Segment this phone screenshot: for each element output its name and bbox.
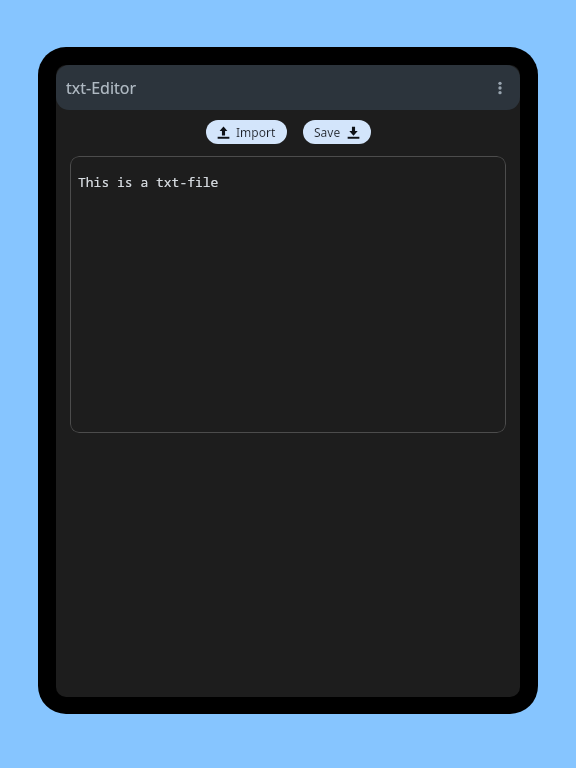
staticText: txt-Editor: [66, 77, 137, 99]
staticText: This is a txt-file: [78, 173, 219, 191]
staticText: Import: [236, 124, 276, 140]
button[interactable]: Save: [303, 120, 371, 144]
button[interactable]: This is a txt-file: [70, 156, 506, 433]
staticText: Save: [314, 124, 341, 140]
button[interactable]: Import: [206, 120, 287, 144]
button[interactable]: More options: [483, 71, 517, 105]
